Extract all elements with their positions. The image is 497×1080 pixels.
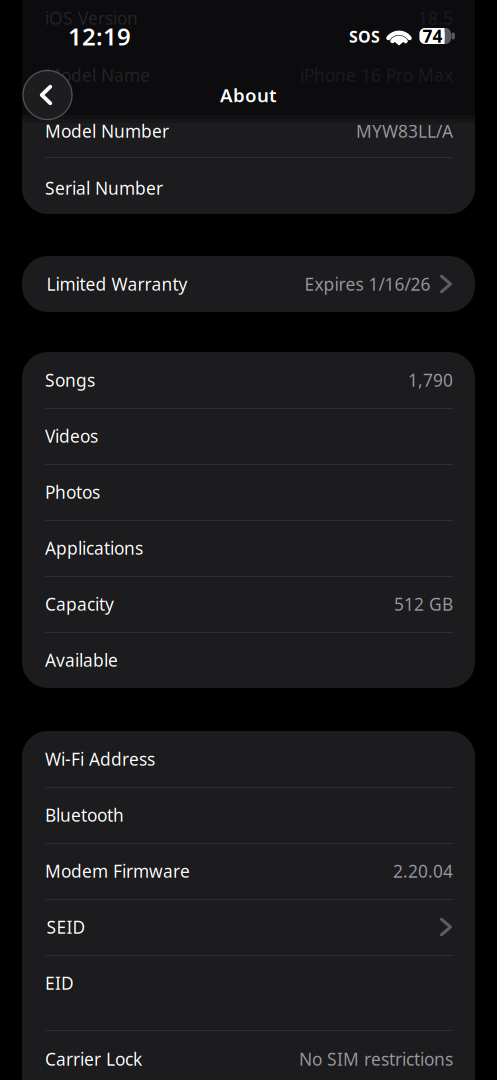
staticText: Songs	[45, 368, 95, 391]
staticText: SOS	[349, 26, 380, 47]
staticText: About	[220, 83, 277, 107]
staticText: SEID	[46, 915, 85, 938]
staticText: Videos	[45, 424, 98, 447]
button[interactable]: Back	[23, 70, 72, 119]
button[interactable]: SEID	[22, 899, 475, 955]
staticText: Modem Firmware	[45, 859, 190, 882]
staticText: 2.20.04	[393, 859, 453, 882]
staticText: MYW83LL/A	[356, 119, 453, 142]
staticText: 512 GB	[394, 592, 453, 615]
staticText: Limited Warranty	[46, 272, 187, 295]
staticText: iPhone 16 Pro Max	[300, 63, 453, 86]
staticText: Expires 1/16/26	[304, 272, 430, 295]
staticText: Capacity	[45, 592, 114, 615]
staticText: No SIM restrictions	[299, 1047, 453, 1070]
staticText: 74	[422, 24, 442, 47]
staticText: Applications	[45, 536, 143, 559]
staticText: 12:19	[68, 20, 131, 52]
staticText: Model Number	[45, 119, 169, 142]
staticText: Bluetooth	[45, 803, 124, 826]
staticText: iOS Version	[45, 6, 138, 29]
staticText: Wi-Fi Address	[45, 747, 155, 770]
staticText: EID	[45, 971, 74, 994]
staticText: Available	[45, 648, 118, 671]
staticText: Model Name	[45, 63, 150, 86]
button[interactable]: Limited Warranty	[22, 256, 475, 312]
staticText: 18.5	[418, 6, 453, 29]
staticText: Carrier Lock	[45, 1047, 142, 1070]
staticText: Photos	[45, 480, 100, 503]
staticText: Serial Number	[45, 176, 163, 199]
staticText: 1,790	[408, 368, 453, 391]
